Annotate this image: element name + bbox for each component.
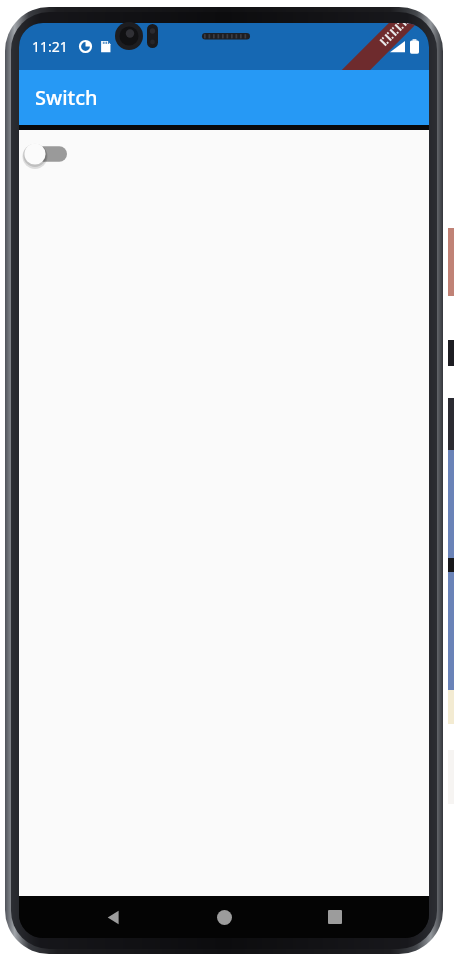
button[interactable]: Toggle switch: [24, 136, 72, 172]
button[interactable]: Recent apps: [314, 896, 356, 938]
button[interactable]: Back: [92, 896, 134, 938]
staticText: Switch: [35, 84, 98, 111]
button[interactable]: Home: [203, 896, 245, 938]
staticText: 11:21: [32, 37, 68, 56]
